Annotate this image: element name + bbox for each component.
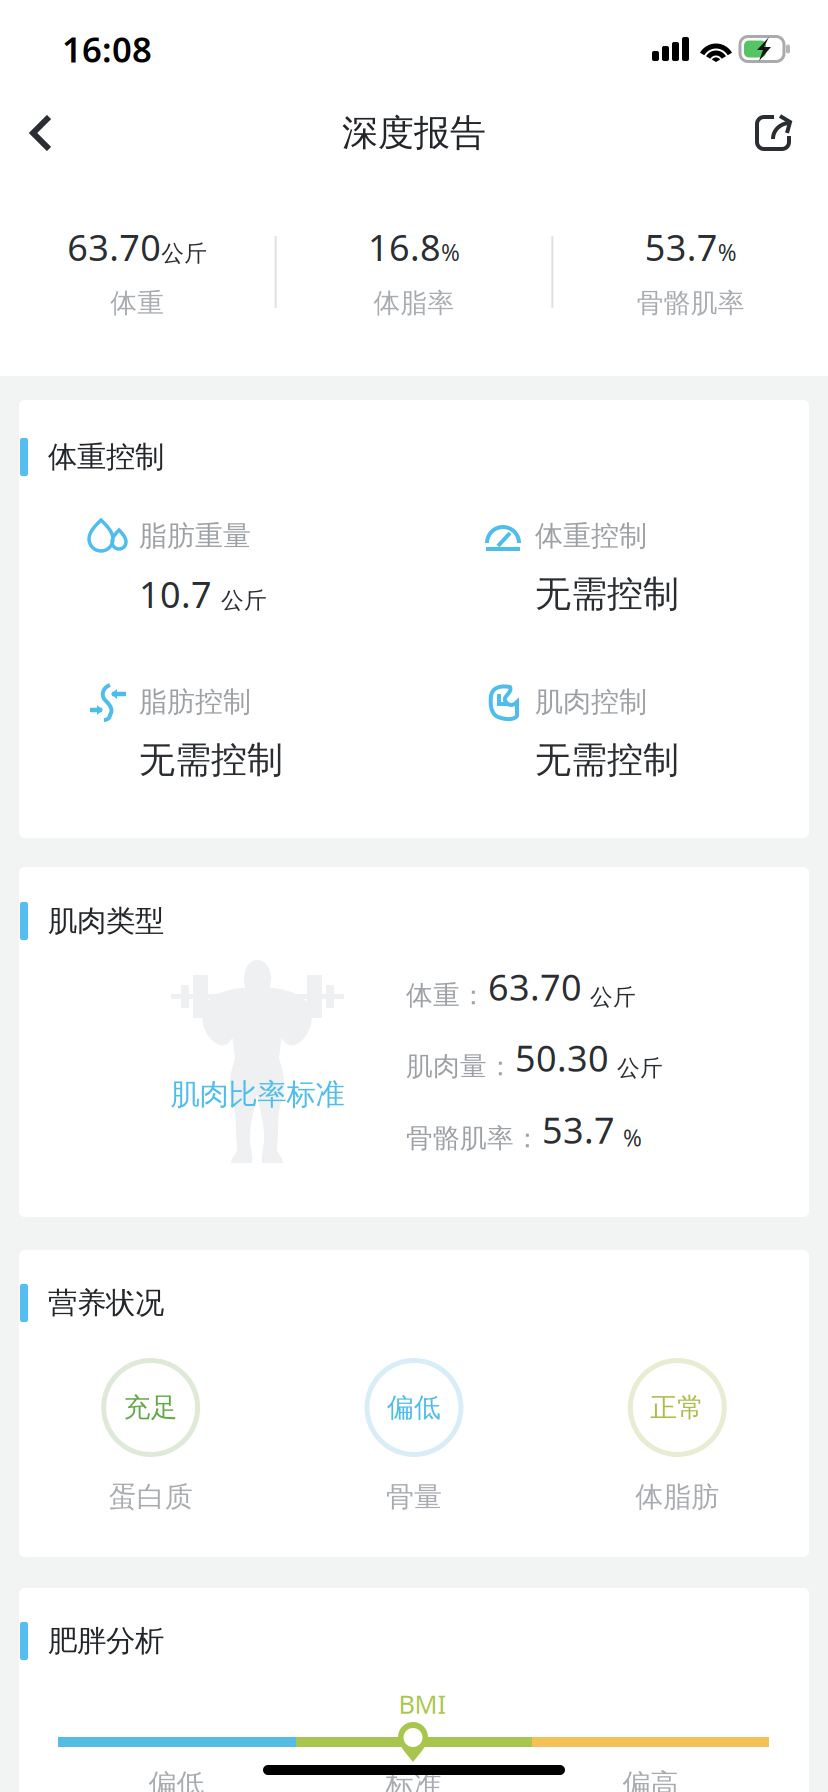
staticText: 无需控制 (535, 572, 679, 616)
staticText: 体重 (110, 287, 164, 319)
staticText: 16:08 (62, 26, 152, 72)
staticText: 肥胖分析 (48, 1623, 164, 1659)
staticText: 脂肪控制 (139, 685, 251, 719)
staticText: 肌肉比率标准 (170, 1076, 344, 1112)
staticText: 10.7 (139, 570, 212, 618)
staticText: 偏低 (387, 1391, 441, 1424)
staticText: 63.70 (488, 963, 582, 1011)
staticText: 体重控制 (535, 519, 647, 553)
staticText: % (623, 1123, 642, 1153)
staticText: 充足 (124, 1391, 178, 1424)
staticText: 肌肉控制 (535, 685, 647, 719)
staticText: % (718, 237, 737, 267)
staticText: 营养状况 (48, 1285, 164, 1321)
staticText: 无需控制 (535, 738, 679, 782)
staticText: 偏高 (622, 1767, 678, 1792)
staticText: 体脂率 (373, 287, 454, 319)
staticText: 偏低 (148, 1767, 204, 1792)
staticText: 蛋白质 (109, 1480, 193, 1514)
staticText: 肌肉类型 (48, 903, 164, 939)
staticText: 16.8 (368, 223, 441, 271)
staticText: 公斤 (221, 586, 267, 614)
staticText: 标准 (385, 1767, 441, 1792)
staticText: BMI (398, 1687, 446, 1721)
staticText: 53.7 (645, 223, 718, 271)
staticText: 体重： (406, 979, 487, 1012)
staticText: 骨量 (386, 1480, 442, 1514)
staticText: 正常 (650, 1391, 704, 1424)
staticText: 公斤 (590, 983, 636, 1011)
staticText: 骨骼肌率 (637, 287, 745, 319)
staticText: 骨骼肌率： (406, 1122, 541, 1155)
staticText: 肌肉量： (406, 1050, 514, 1083)
button[interactable]: 分享 (732, 91, 814, 175)
staticText: 无需控制 (139, 738, 283, 782)
staticText: 50.30 (515, 1034, 609, 1082)
button[interactable]: 返回 (0, 91, 82, 175)
staticText: 公斤 (161, 239, 207, 267)
staticText: 63.70 (67, 223, 161, 271)
staticText: 脂肪重量 (139, 519, 251, 553)
staticText: 体脂肪 (635, 1480, 719, 1514)
staticText: 深度报告 (342, 111, 486, 155)
staticText: 公斤 (617, 1054, 663, 1082)
staticText: 53.7 (542, 1106, 615, 1154)
staticText: 体重控制 (48, 439, 164, 475)
staticText: % (441, 237, 460, 267)
